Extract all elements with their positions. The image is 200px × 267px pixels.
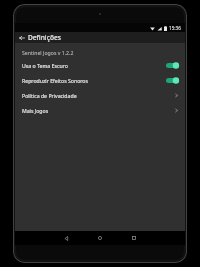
staticText: Sentinel Jogos v 1.2.2: [22, 49, 74, 56]
button[interactable]: Sentinel Jogos v 1.2.2: [15, 46, 185, 58]
staticText: Usa o Tema Escuro: [22, 62, 163, 69]
button[interactable]: Back: [49, 231, 83, 245]
button[interactable]: Back: [15, 32, 28, 43]
button[interactable]: Política de Privacidade: [15, 88, 185, 103]
button[interactable]: Home: [83, 231, 117, 245]
button[interactable]: Mais Jogos: [15, 103, 185, 118]
staticText: Política de Privacidade: [22, 92, 172, 99]
staticText: 15:36: [169, 25, 181, 31]
staticText: Definições: [28, 33, 61, 42]
button[interactable]: Reproduzir Efeitos Sonoros: [15, 73, 185, 88]
button[interactable]: Recent apps: [117, 231, 151, 245]
button[interactable]: Toggle on: [166, 77, 179, 84]
button[interactable]: Usa o Tema Escuro: [15, 58, 185, 73]
staticText: Reproduzir Efeitos Sonoros: [22, 77, 163, 84]
button[interactable]: Toggle on: [166, 62, 179, 69]
staticText: Mais Jogos: [22, 107, 172, 114]
